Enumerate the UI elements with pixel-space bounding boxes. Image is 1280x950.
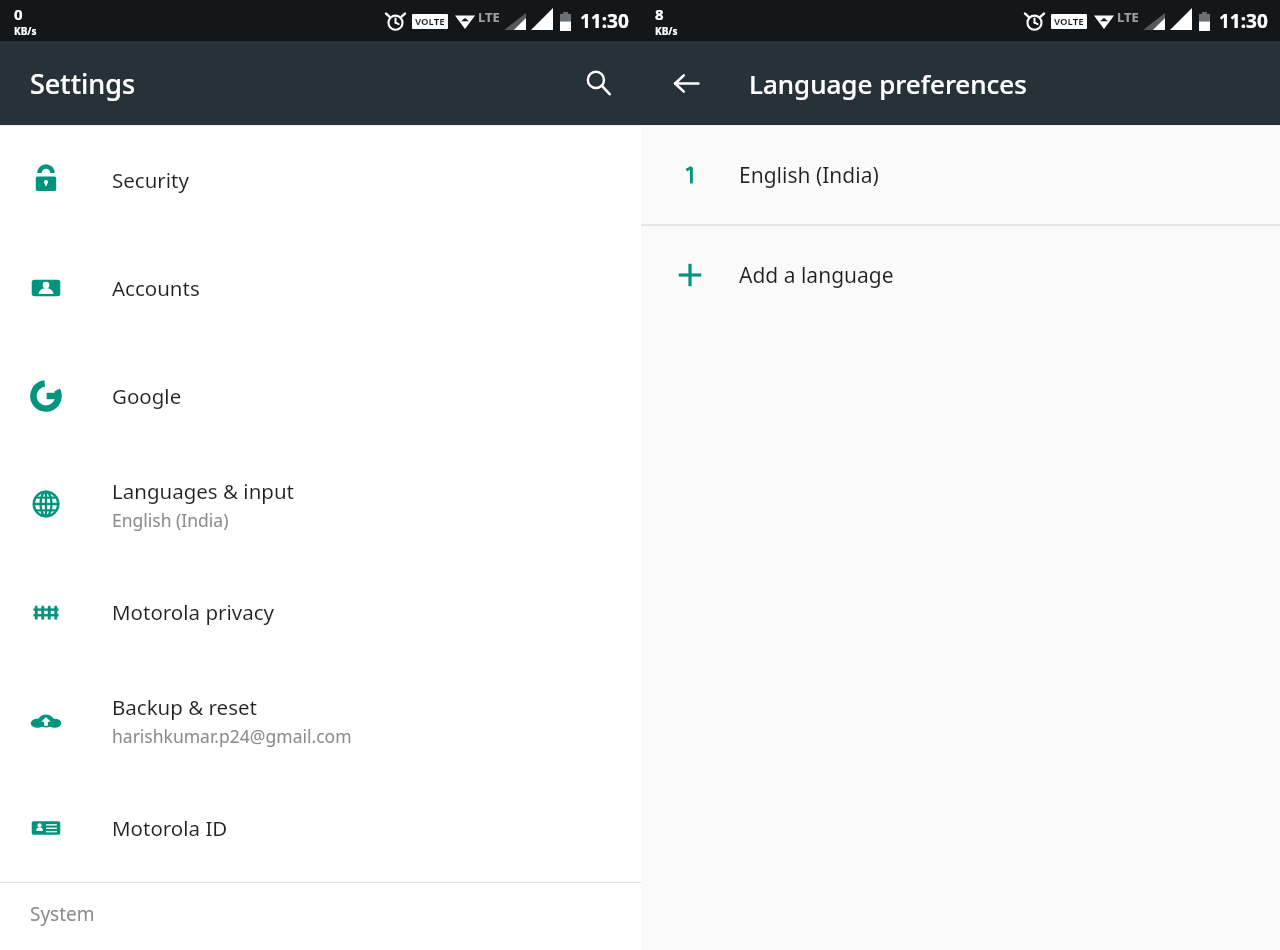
staticText: 0 (14, 4, 23, 24)
button[interactable]: Google (0, 342, 641, 450)
staticText: Languages & input (112, 477, 294, 505)
staticText: Security (112, 166, 189, 194)
staticText: KB/s (655, 24, 678, 38)
staticText: 11:30 (580, 8, 629, 34)
staticText: Settings (30, 65, 136, 102)
staticText: Google (112, 382, 182, 410)
staticText: Accounts (112, 274, 200, 302)
staticText: Backup & reset (112, 693, 257, 721)
button[interactable]: Back (663, 60, 709, 106)
staticText: English (India) (739, 161, 879, 190)
staticText: LTE (1117, 8, 1139, 26)
staticText: LTE (478, 8, 500, 26)
staticText: Add a language (739, 261, 894, 290)
button[interactable]: Languages & input (0, 450, 641, 558)
staticText: VOLTE (1054, 15, 1084, 28)
button[interactable]: Accounts (0, 234, 641, 342)
button[interactable]: Motorola ID (0, 774, 641, 882)
button[interactable]: Motorola privacy (0, 558, 641, 666)
staticText: System (30, 901, 95, 927)
staticText: KB/s (14, 24, 37, 38)
staticText: Language preferences (749, 66, 1027, 101)
staticText: 11:30 (1219, 8, 1268, 34)
button[interactable]: Search (575, 60, 621, 106)
button[interactable]: Security (0, 126, 641, 234)
button[interactable]: English (India) (641, 126, 1280, 224)
staticText: Motorola privacy (112, 598, 274, 626)
staticText: VOLTE (415, 15, 445, 28)
staticText: 8 (655, 4, 664, 24)
button[interactable]: Backup & reset (0, 666, 641, 774)
staticText: harishkumar.p24@gmail.com (112, 724, 352, 748)
staticText: Motorola ID (112, 814, 228, 842)
button[interactable]: Add a language (641, 226, 1280, 324)
staticText: English (India) (112, 508, 229, 532)
